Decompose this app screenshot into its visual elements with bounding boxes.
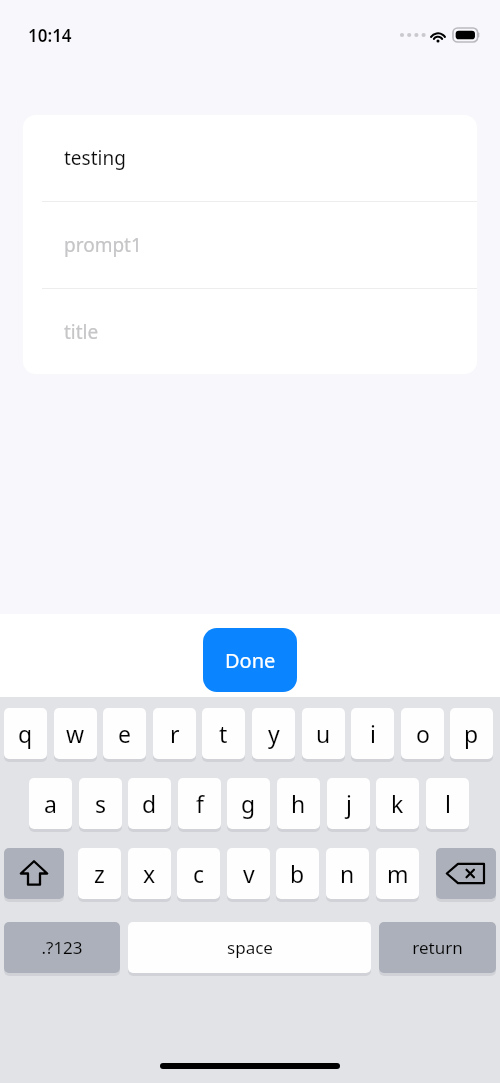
button[interactable]: prompt1: [23, 202, 477, 288]
staticText: w: [66, 718, 85, 749]
button[interactable]: testing: [23, 115, 477, 201]
button[interactable]: u: [302, 708, 345, 761]
button[interactable]: r: [153, 708, 196, 761]
button[interactable]: y: [252, 708, 295, 761]
staticText: h: [291, 788, 306, 819]
button[interactable]: w: [54, 708, 97, 761]
button[interactable]: return: [379, 922, 496, 975]
staticText: r: [170, 718, 180, 749]
staticText: q: [18, 718, 33, 749]
button[interactable]: k: [376, 778, 419, 831]
staticText: d: [142, 788, 157, 819]
button[interactable]: h: [277, 778, 320, 831]
button[interactable]: Backspace: [436, 848, 496, 901]
button[interactable]: g: [227, 778, 270, 831]
button[interactable]: a: [29, 778, 72, 831]
staticText: s: [95, 788, 107, 819]
staticText: x: [143, 858, 156, 889]
button[interactable]: p: [450, 708, 493, 761]
staticText: z: [94, 858, 105, 889]
staticText: t: [219, 718, 228, 749]
staticText: title: [64, 319, 99, 345]
button[interactable]: space: [128, 922, 371, 975]
button[interactable]: f: [178, 778, 221, 831]
button[interactable]: .?123: [4, 922, 120, 975]
staticText: 10:14: [28, 24, 72, 47]
button[interactable]: x: [128, 848, 171, 901]
staticText: testing: [64, 145, 126, 171]
button[interactable]: t: [202, 708, 245, 761]
button[interactable]: o: [401, 708, 444, 761]
staticText: n: [340, 858, 355, 889]
staticText: u: [316, 718, 331, 749]
staticText: prompt1: [64, 232, 142, 258]
staticText: c: [193, 858, 205, 889]
button[interactable]: n: [326, 848, 369, 901]
staticText: i: [370, 718, 376, 749]
staticText: Done: [225, 647, 276, 674]
button[interactable]: m: [376, 848, 419, 901]
button[interactable]: d: [128, 778, 171, 831]
button[interactable]: q: [4, 708, 47, 761]
button[interactable]: Shift: [4, 848, 64, 901]
staticText: e: [118, 718, 131, 749]
button[interactable]: j: [327, 778, 370, 831]
button[interactable]: v: [227, 848, 270, 901]
button[interactable]: z: [78, 848, 121, 901]
staticText: g: [241, 788, 256, 819]
staticText: l: [445, 788, 451, 819]
staticText: a: [44, 788, 57, 819]
button[interactable]: s: [79, 778, 122, 831]
staticText: b: [290, 858, 305, 889]
button[interactable]: l: [426, 778, 469, 831]
staticText: k: [391, 788, 404, 819]
button[interactable]: e: [103, 708, 146, 761]
staticText: m: [387, 858, 409, 889]
staticText: space: [227, 936, 273, 959]
staticText: j: [346, 788, 352, 819]
staticText: f: [196, 788, 204, 819]
staticText: v: [243, 858, 255, 889]
button[interactable]: Done: [203, 628, 297, 692]
button[interactable]: c: [177, 848, 220, 901]
staticText: y: [268, 718, 280, 749]
staticText: .?123: [41, 936, 83, 959]
staticText: o: [416, 718, 430, 749]
button[interactable]: title: [23, 289, 477, 374]
button[interactable]: b: [276, 848, 319, 901]
staticText: return: [412, 936, 463, 959]
button[interactable]: i: [351, 708, 394, 761]
staticText: p: [464, 718, 479, 749]
